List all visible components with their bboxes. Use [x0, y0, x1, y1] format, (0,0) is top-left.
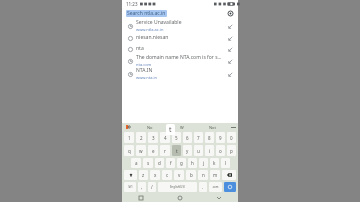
button[interactable]: m	[210, 170, 220, 180]
staticText: f	[170, 160, 172, 166]
button[interactable]: 0	[227, 132, 236, 143]
button[interactable]: u	[194, 145, 203, 156]
staticText: niesan.niesan	[136, 34, 169, 41]
button[interactable]: 9	[216, 132, 225, 143]
button[interactable]: a	[131, 158, 141, 168]
button[interactable]: n	[198, 170, 208, 180]
staticText: .com	[212, 185, 219, 189]
button[interactable]: l	[221, 158, 230, 168]
staticText: English(US)	[170, 185, 185, 189]
button[interactable]: nta	[122, 43, 238, 54]
button[interactable]: !#1	[124, 182, 136, 192]
other: Backspace	[227, 173, 232, 177]
staticText: Service Unavailable	[136, 19, 182, 26]
staticText: g	[180, 160, 183, 166]
button[interactable]: Go	[224, 182, 236, 192]
button[interactable]: 2	[136, 132, 146, 143]
button[interactable]: p	[227, 145, 236, 156]
button[interactable]: Back	[199, 193, 238, 202]
button[interactable]: ,	[138, 182, 146, 192]
button[interactable]: 3	[148, 132, 158, 143]
button[interactable]: Shift	[124, 170, 137, 180]
button[interactable]: w	[136, 145, 146, 156]
button[interactable]: y	[183, 145, 192, 156]
staticText: r	[164, 148, 166, 154]
button[interactable]: k	[210, 158, 219, 168]
button[interactable]: j	[199, 158, 208, 168]
staticText: a	[135, 160, 138, 166]
button[interactable]: Clear search	[226, 9, 234, 17]
staticText: i	[209, 148, 211, 154]
staticText: u	[197, 148, 200, 154]
button[interactable]: English(US)	[158, 182, 197, 192]
button[interactable]: The domain name NTA.com is for sa...	[122, 54, 238, 67]
staticText: No	[147, 125, 153, 130]
button[interactable]: x	[150, 170, 160, 180]
button[interactable]: z	[139, 170, 148, 180]
button[interactable]: 5	[172, 132, 181, 143]
button[interactable]: Insert suggestion	[226, 45, 234, 53]
staticText: o	[219, 148, 222, 154]
staticText: 1	[128, 135, 131, 141]
button[interactable]: q	[124, 145, 134, 156]
button[interactable]: 8	[205, 132, 214, 143]
staticText: Search ntla.ac.in	[127, 10, 166, 17]
button[interactable]: b	[186, 170, 196, 180]
button[interactable]: h	[188, 158, 197, 168]
button[interactable]: t	[172, 145, 181, 156]
button[interactable]: e	[148, 145, 158, 156]
button[interactable]: o	[216, 145, 225, 156]
button[interactable]: d	[155, 158, 164, 168]
button[interactable]: i	[205, 145, 214, 156]
button[interactable]: niesan.niesan	[122, 32, 238, 43]
button[interactable]: No	[134, 123, 166, 131]
staticText: The domain name NTA.com is for sa...	[136, 54, 224, 61]
button[interactable]: r	[160, 145, 170, 156]
button[interactable]: Not	[197, 123, 228, 131]
staticText: t	[176, 148, 178, 154]
button[interactable]: Home	[160, 193, 199, 202]
staticText: 9	[219, 135, 222, 141]
button[interactable]: 4	[160, 132, 170, 143]
staticText: Not	[209, 125, 216, 130]
staticText: /	[151, 184, 153, 190]
button[interactable]: g	[177, 158, 186, 168]
staticText: ,	[141, 184, 143, 190]
button[interactable]: More options	[228, 123, 238, 131]
button[interactable]: Backspace	[222, 170, 236, 180]
staticText: j	[203, 160, 205, 166]
staticText: n	[202, 172, 205, 178]
staticText: z	[142, 172, 145, 178]
staticText: 3	[152, 135, 155, 141]
button[interactable]: Service Unavailable	[122, 19, 238, 32]
staticText: www.ntla.ac.in	[136, 27, 164, 32]
button[interactable]: W	[166, 123, 197, 131]
button[interactable]: /	[148, 182, 156, 192]
button[interactable]: Search ntla.ac.in	[122, 8, 238, 18]
staticText: k	[213, 160, 216, 166]
button[interactable]: f	[166, 158, 175, 168]
staticText: .	[202, 184, 204, 190]
button[interactable]: NTA.IN	[122, 67, 238, 80]
staticText: d	[158, 160, 161, 166]
staticText: 0	[230, 135, 233, 141]
button[interactable]: Insert suggestion	[226, 22, 234, 30]
staticText: 4	[164, 135, 167, 141]
button[interactable]: Recents	[122, 193, 160, 202]
staticText: c	[166, 172, 169, 178]
button[interactable]: Voice input	[122, 123, 134, 131]
button[interactable]: 6	[183, 132, 192, 143]
button[interactable]: v	[174, 170, 184, 180]
staticText: p	[230, 148, 233, 154]
staticText: 8	[208, 135, 211, 141]
button[interactable]: Insert suggestion	[226, 57, 234, 65]
button[interactable]: Insert suggestion	[226, 70, 234, 78]
button[interactable]: c	[162, 170, 172, 180]
button[interactable]: 1	[124, 132, 134, 143]
button[interactable]: .com	[209, 182, 222, 192]
staticText: www.nta.in	[136, 75, 158, 80]
button[interactable]: .	[199, 182, 207, 192]
button[interactable]: 7	[194, 132, 203, 143]
button[interactable]: Insert suggestion	[226, 34, 234, 42]
button[interactable]: s	[143, 158, 153, 168]
